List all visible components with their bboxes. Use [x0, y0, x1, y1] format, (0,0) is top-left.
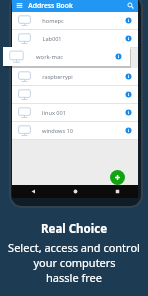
- button[interactable]: Open navigation menu: [16, 2, 23, 9]
- staticText: raspberrypi: [42, 73, 73, 81]
- button[interactable]: Details: [12, 86, 138, 103]
- button[interactable]: work-mac: [3, 47, 130, 66]
- staticText: hassle free: [46, 270, 102, 285]
- button[interactable]: windows 10: [12, 122, 138, 139]
- button[interactable]: Add computer: [110, 170, 125, 185]
- staticText: Lab001: [42, 35, 62, 43]
- button[interactable]: Details: [115, 53, 122, 60]
- button[interactable]: Search: [127, 2, 134, 9]
- button[interactable]: Details: [125, 35, 132, 42]
- staticText: linux 001: [42, 109, 66, 117]
- button[interactable]: linux 001: [12, 104, 138, 121]
- staticText: Address Book: [28, 1, 73, 10]
- button[interactable]: Home: [54, 185, 96, 198]
- button[interactable]: Details: [125, 127, 132, 134]
- button[interactable]: Details: [125, 109, 132, 116]
- button[interactable]: Details: [125, 91, 132, 98]
- button[interactable]: Back: [12, 185, 54, 198]
- button[interactable]: Lab001: [12, 30, 138, 47]
- staticText: homepc: [42, 17, 64, 25]
- button[interactable]: raspberrypi: [12, 68, 138, 85]
- staticText: windows 10: [42, 127, 73, 135]
- button[interactable]: homepc: [12, 12, 138, 29]
- staticText: Select, access and control: [8, 240, 140, 255]
- staticText: work-mac: [36, 53, 63, 61]
- button[interactable]: Recent apps: [96, 185, 138, 198]
- button[interactable]: Details: [125, 17, 132, 24]
- staticText: Real Choice: [41, 221, 107, 237]
- staticText: your computers: [33, 255, 116, 270]
- button[interactable]: Details: [125, 73, 132, 80]
